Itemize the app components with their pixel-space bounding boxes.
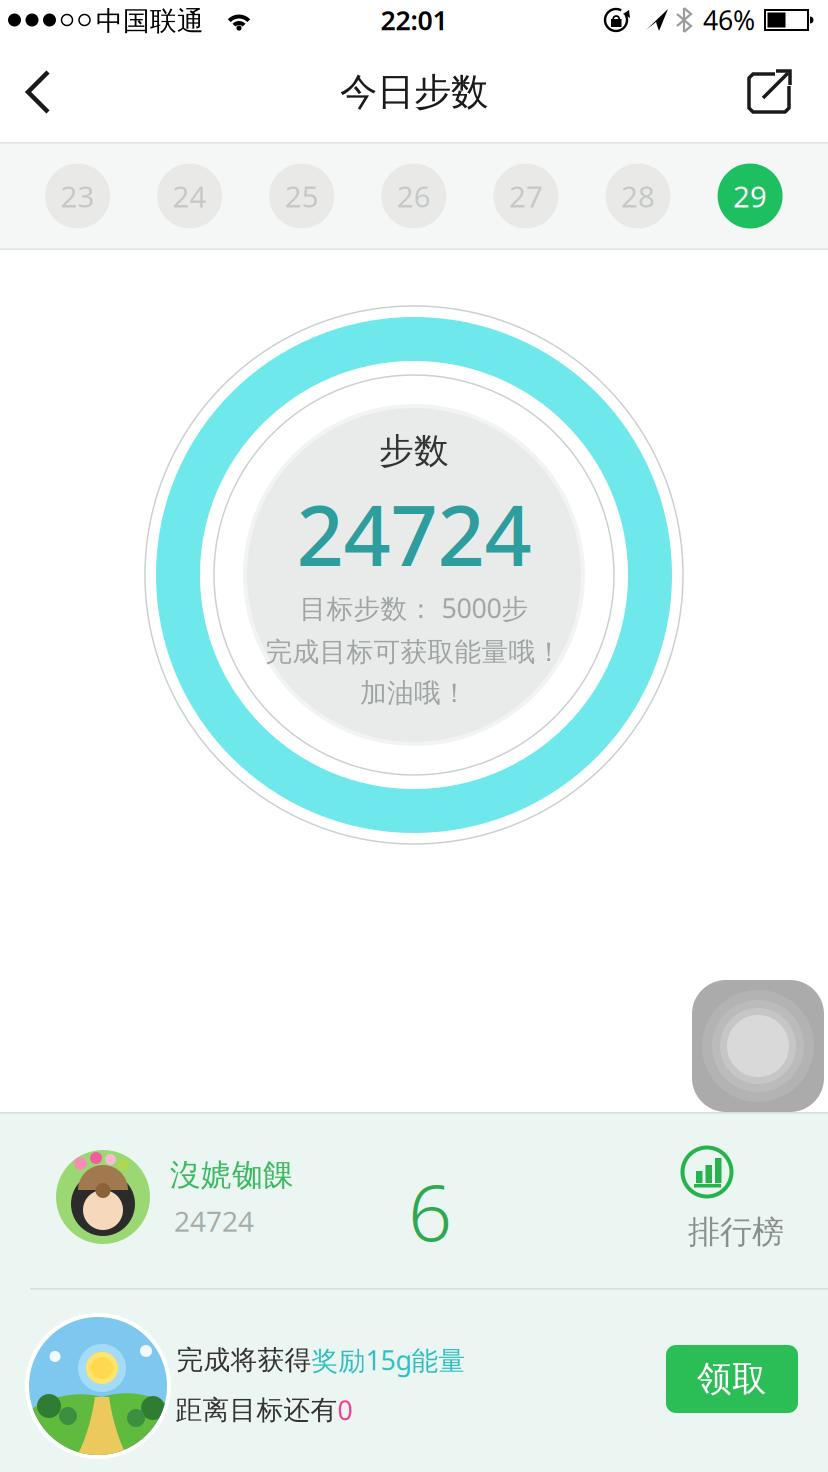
staticText: 沒婋铷餜 [170,1156,294,1194]
staticText: 加油哦！ [360,677,468,709]
staticText: 今日步数 [340,69,488,115]
button[interactable]: 29 [718,163,783,228]
button[interactable]: 24 [157,163,222,228]
staticText: 24724 [296,479,531,589]
staticText: 奖励15g能量 [311,1342,465,1378]
staticText: 0 [337,1392,352,1428]
staticText: 28 [621,176,655,215]
button[interactable]: 排行榜 [647,1137,797,1267]
button[interactable]: 领取 [666,1345,798,1413]
staticText: 26 [397,176,431,215]
staticText: 中国联通 [96,5,204,37]
staticText: 27 [509,176,543,215]
button[interactable]: AssistiveTouch [692,980,824,1112]
staticText: 23 [60,176,94,215]
staticText: 排行榜 [688,1212,784,1252]
staticText: 领取 [697,1358,767,1400]
button[interactable]: 25 [269,163,334,228]
staticText: 步数 [379,430,449,472]
staticText: 46% [703,2,755,38]
staticText: 24724 [174,1202,254,1240]
staticText: 29 [733,176,767,215]
staticText: 6 [408,1160,452,1262]
button[interactable]: Share [745,68,793,116]
staticText: 完成将获得 [176,1344,311,1376]
staticText: 22:01 [380,2,447,38]
staticText: 目标步数： 5000步 [299,590,528,626]
staticText: 距离目标还有 [175,1394,337,1426]
button[interactable]: 27 [493,163,558,228]
button[interactable]: 28 [605,163,670,228]
staticText: 25 [285,176,319,215]
staticText: 完成目标可获取能量哦！ [265,636,562,668]
button[interactable]: Back [22,68,66,116]
button[interactable]: 26 [381,163,446,228]
button[interactable]: 23 [45,163,110,228]
staticText: 24 [173,176,207,215]
